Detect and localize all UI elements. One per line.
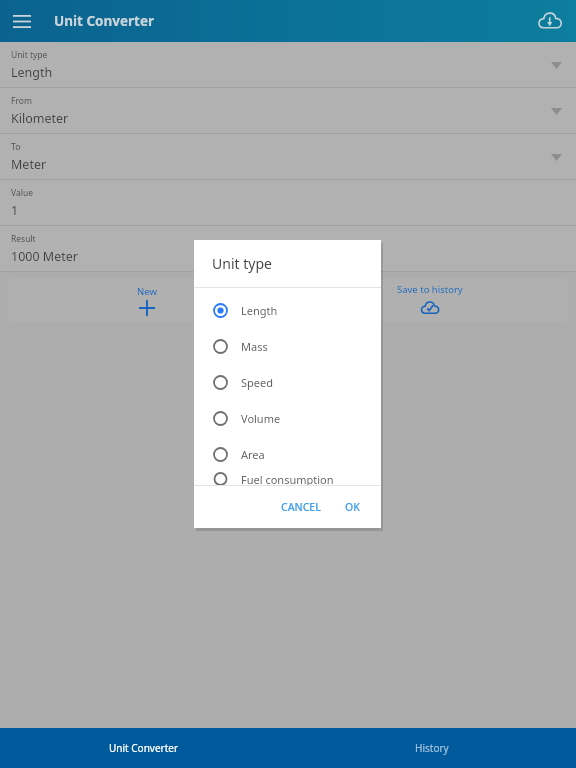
staticText: Result (11, 233, 36, 245)
staticText: Mass (241, 339, 268, 354)
staticText: History (415, 741, 449, 755)
staticText: Unit type (212, 254, 272, 273)
staticText: 1 (11, 202, 19, 219)
staticText: Length (11, 64, 53, 81)
button[interactable]: Mass (194, 328, 381, 364)
staticText: Kilometer (11, 110, 69, 127)
staticText: Unit Converter (54, 12, 155, 30)
staticText: Volume (241, 411, 281, 426)
staticText: Fuel consumption (241, 472, 334, 486)
staticText: To (11, 141, 21, 153)
staticText: New (137, 285, 157, 298)
button[interactable]: Save to history (291, 278, 568, 322)
staticText: Speed (241, 375, 273, 390)
staticText: Meter (11, 156, 47, 173)
button[interactable]: Result (0, 226, 576, 272)
staticText: 1000 Meter (11, 248, 78, 265)
button[interactable]: Download (534, 5, 566, 37)
button[interactable]: Speed (194, 364, 381, 400)
button[interactable]: OK (338, 495, 367, 519)
button[interactable]: Length (194, 292, 381, 328)
button[interactable]: Unit type (0, 42, 576, 88)
staticText: Length (241, 303, 278, 318)
button[interactable]: Value (0, 180, 576, 226)
button[interactable]: From (0, 88, 576, 134)
button[interactable]: To (0, 134, 576, 180)
button[interactable]: Fuel consumption (194, 472, 381, 486)
staticText: Save to history (397, 283, 463, 296)
staticText: Unit Converter (109, 741, 179, 755)
staticText: OK (345, 500, 360, 514)
button[interactable]: Unit Converter (0, 728, 288, 768)
button[interactable]: CANCEL (274, 495, 328, 519)
button[interactable]: History (288, 728, 576, 768)
staticText: CANCEL (281, 500, 321, 514)
button[interactable]: Volume (194, 400, 381, 436)
staticText: Area (241, 447, 265, 462)
staticText: From (11, 95, 32, 107)
button[interactable]: Open navigation menu (8, 7, 36, 35)
staticText: Value (11, 187, 33, 199)
button[interactable]: New (8, 278, 285, 322)
button[interactable]: Area (194, 436, 381, 472)
staticText: Unit type (11, 49, 48, 61)
